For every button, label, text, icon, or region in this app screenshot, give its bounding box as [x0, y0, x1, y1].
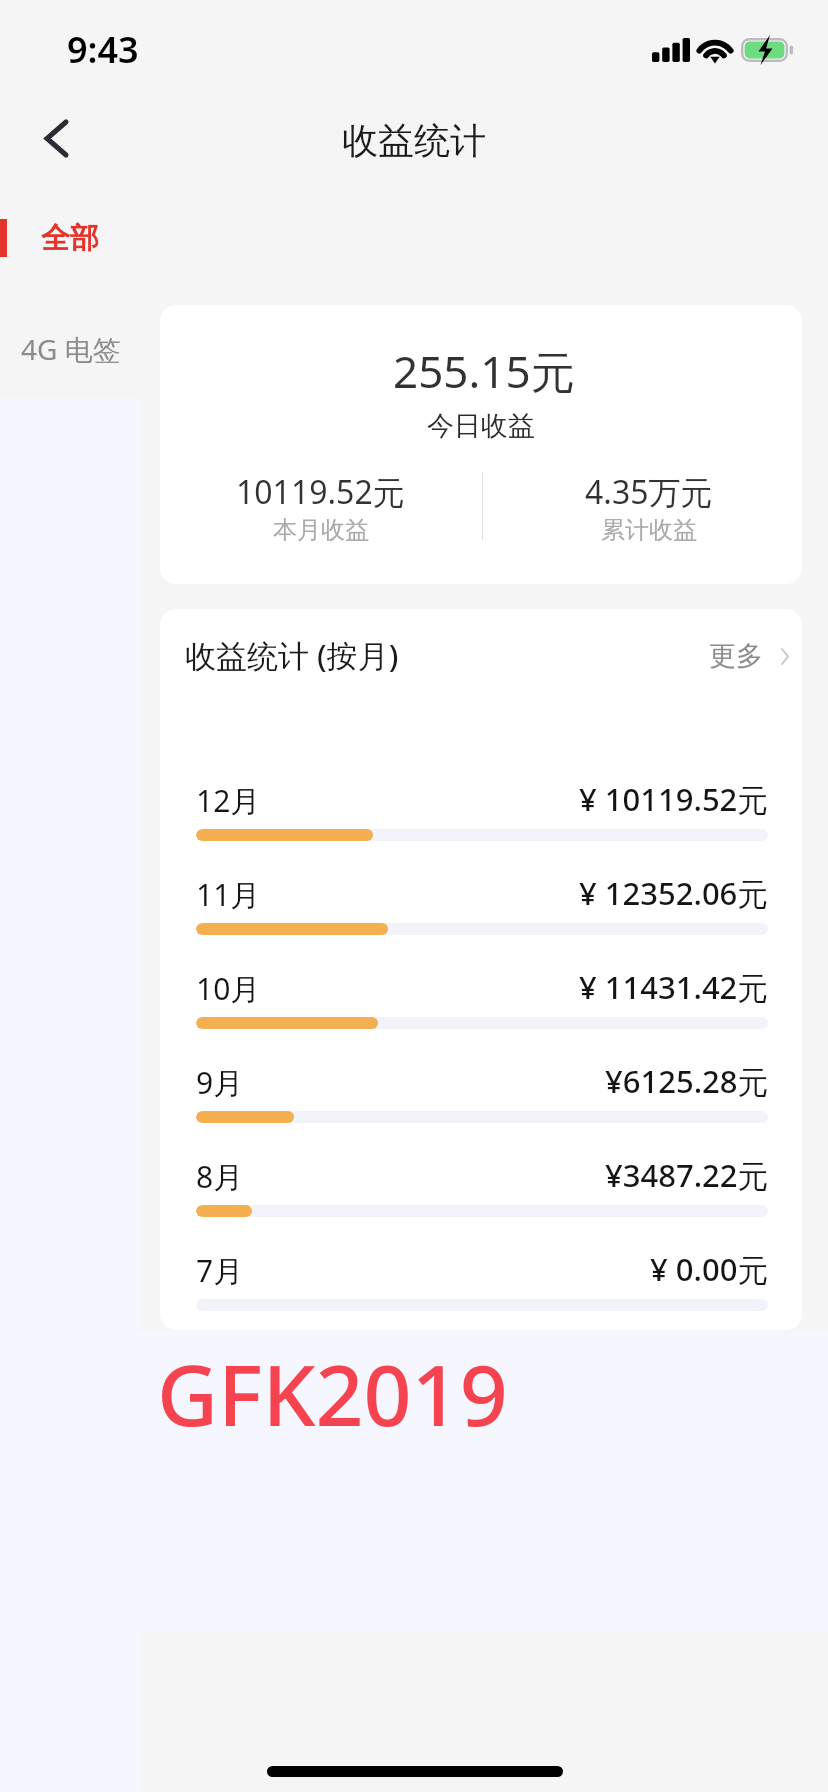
staticText: 收益统计 (按月): [185, 634, 399, 676]
staticText: 4.35万元: [585, 470, 713, 514]
button[interactable]: 9月: [160, 1058, 802, 1152]
staticText: 8月: [196, 1156, 244, 1197]
button[interactable]: 4G 电签: [0, 320, 139, 378]
button[interactable]: Back: [21, 103, 91, 173]
staticText: ¥ 12352.06元: [579, 872, 769, 914]
button[interactable]: 10月: [160, 964, 802, 1058]
staticText: 10119.52元: [236, 470, 405, 514]
staticText: 累计收益: [601, 515, 697, 545]
staticText: 11月: [196, 874, 261, 915]
staticText: 10月: [196, 968, 261, 1009]
staticText: 7月: [196, 1250, 244, 1291]
button[interactable]: 7月: [160, 1246, 802, 1330]
staticText: 4G 电签: [21, 330, 121, 368]
staticText: 今日收益: [427, 409, 535, 443]
button[interactable]: 11月: [160, 870, 802, 964]
staticText: 9:43: [67, 25, 139, 74]
staticText: 全部: [41, 220, 99, 257]
staticText: ¥ 11431.42元: [579, 966, 769, 1008]
button[interactable]: 全部: [0, 199, 139, 277]
button[interactable]: 12月: [160, 776, 802, 870]
staticText: 12月: [196, 780, 261, 821]
staticText: ¥3487.22元: [605, 1154, 769, 1196]
button[interactable]: 8月: [160, 1152, 802, 1246]
staticText: ¥ 0.00元: [650, 1248, 769, 1290]
staticText: ¥ 10119.52元: [579, 778, 769, 820]
staticText: 本月收益: [273, 515, 369, 545]
staticText: ¥6125.28元: [605, 1060, 769, 1102]
staticText: 255.15元: [393, 341, 575, 401]
staticText: 更多: [709, 639, 763, 673]
button[interactable]: 更多: [709, 626, 802, 686]
staticText: 9月: [196, 1062, 244, 1103]
staticText: GFK2019: [157, 1336, 508, 1450]
staticText: 收益统计: [342, 118, 486, 163]
